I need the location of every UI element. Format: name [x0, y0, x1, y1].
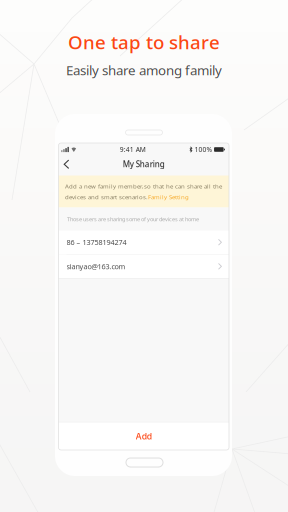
staticText: My Sharing	[123, 159, 165, 170]
button[interactable]: slanyao@163.com	[58, 255, 229, 278]
staticText: Those users are sharing some of your dev…	[67, 215, 199, 223]
staticText: One tap to share	[68, 29, 220, 55]
staticText: devices and smart scenarios.	[65, 193, 148, 201]
button[interactable]: Add	[58, 422, 229, 450]
staticText: 100%	[194, 145, 212, 154]
staticText: Family Setting	[148, 193, 189, 201]
staticText: Add	[136, 430, 152, 442]
staticText: slanyao@163.com	[66, 261, 125, 271]
staticText: 86 – 13758194274	[66, 237, 126, 247]
button[interactable]: Family Setting	[148, 193, 189, 201]
button[interactable]: 86 – 13758194274	[58, 230, 229, 254]
button[interactable]: Back	[58, 156, 74, 175]
staticText: 9:41 AM	[120, 145, 146, 154]
staticText: Add a new family member,so that he can s…	[65, 182, 222, 190]
staticText: Easily share among family	[66, 61, 222, 79]
